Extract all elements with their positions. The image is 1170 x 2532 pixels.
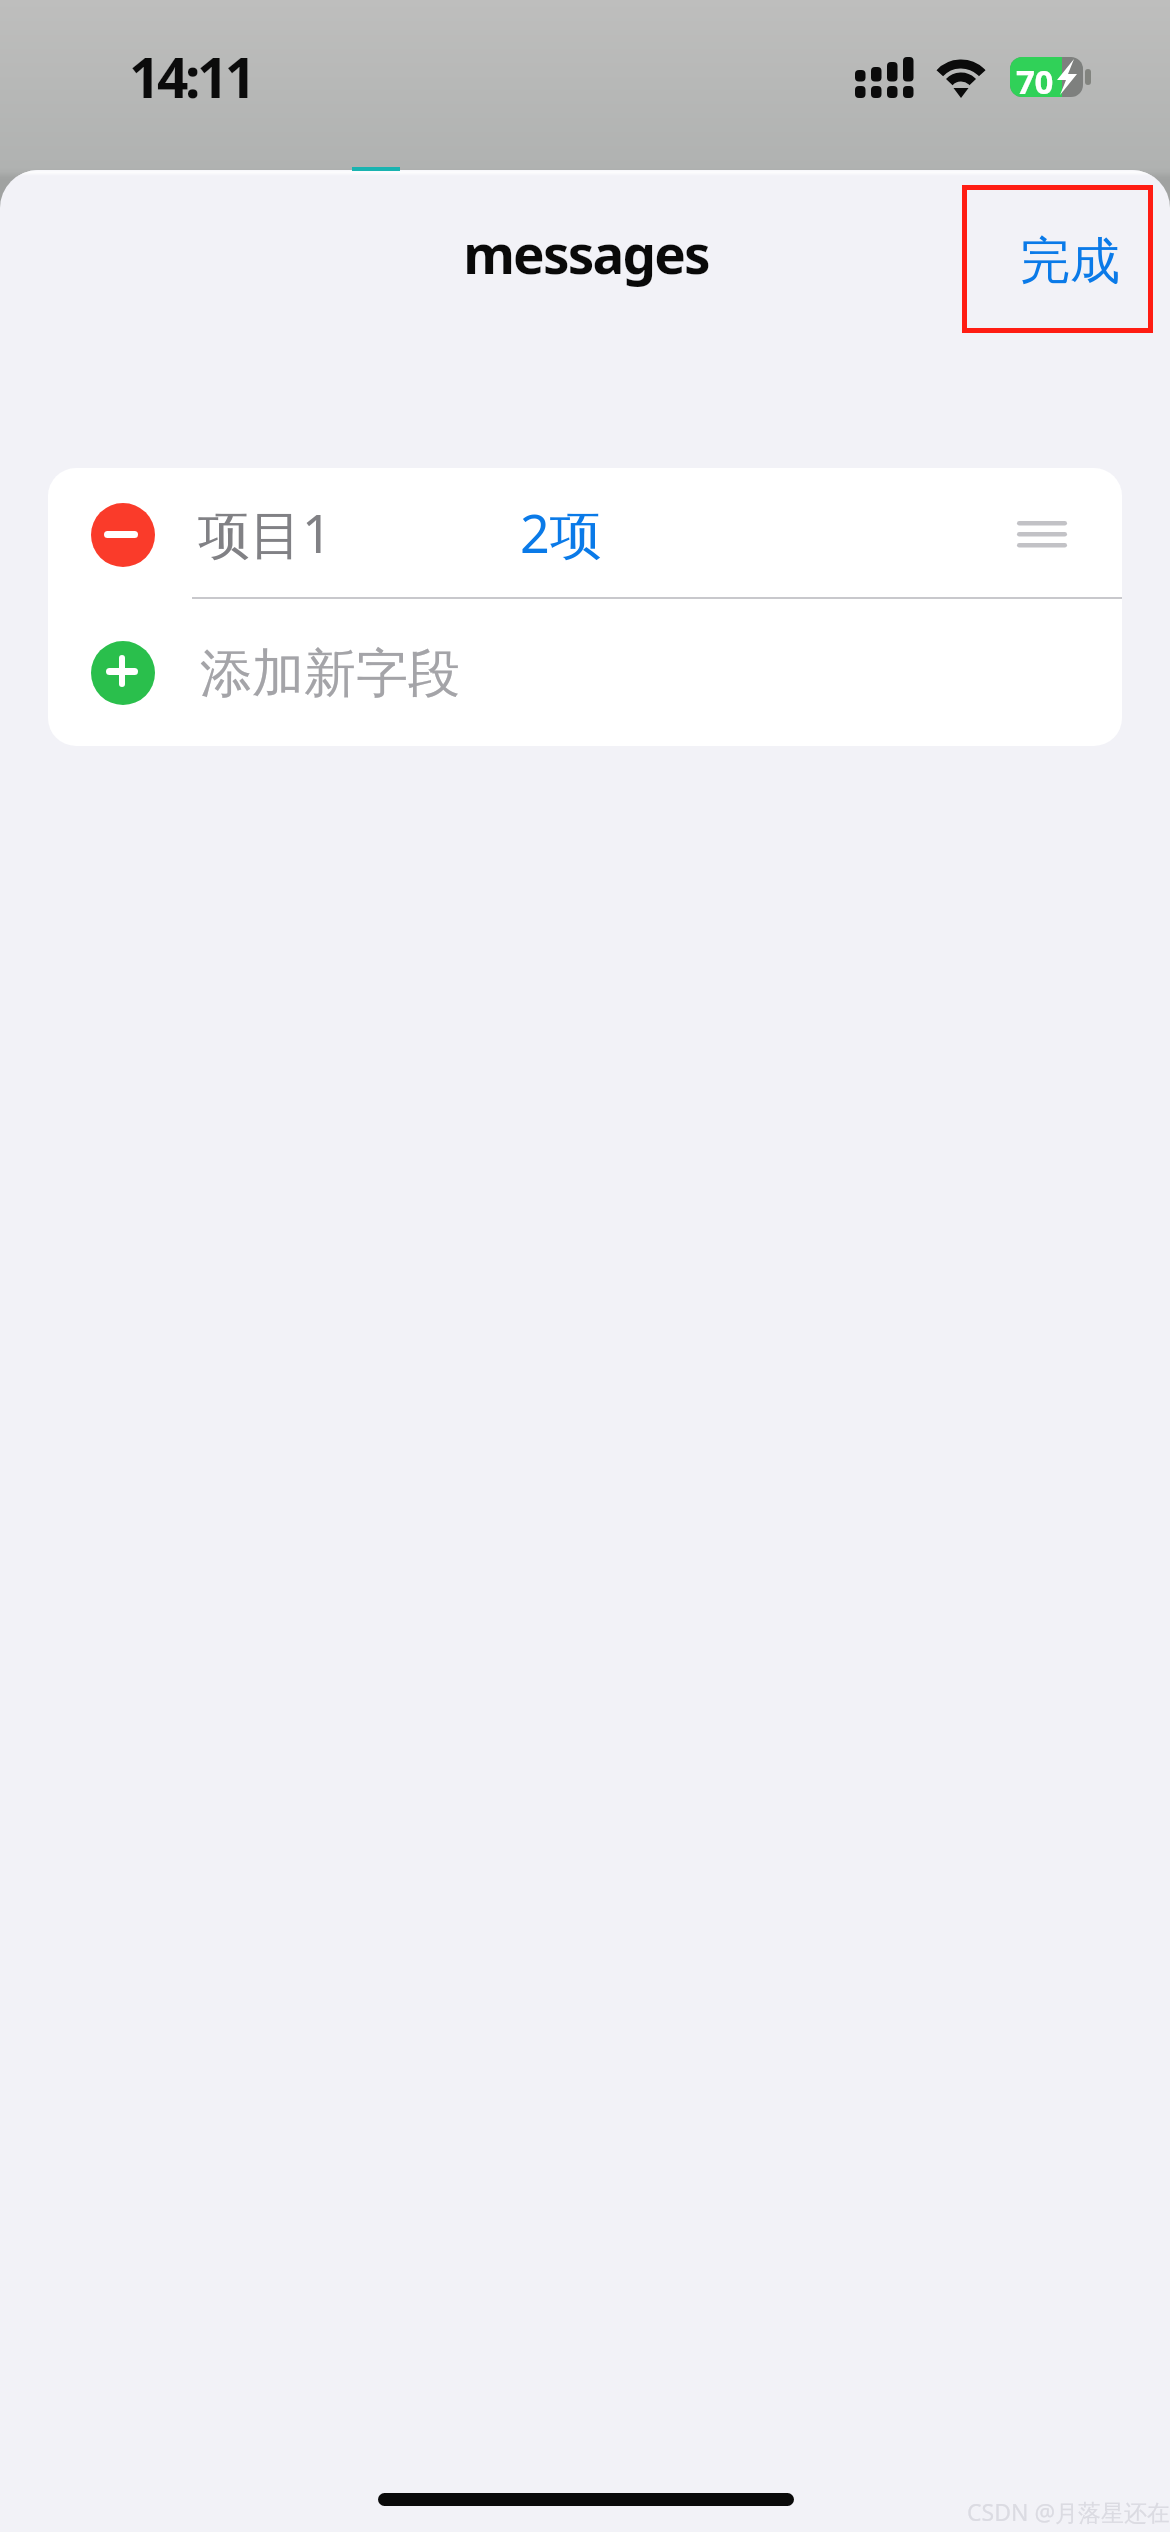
- button[interactable]: Remove item: [91, 503, 155, 567]
- staticText: 70: [1016, 59, 1053, 104]
- button[interactable]: Remove item: [48, 468, 1122, 597]
- staticText: 项目1: [198, 497, 332, 568]
- staticText: 2项: [520, 497, 602, 568]
- button[interactable]: Add new field: [91, 641, 155, 705]
- staticText: 添加新字段: [200, 641, 460, 707]
- staticText: CSDN @月落星还在: [967, 2496, 1170, 2527]
- button[interactable]: Add new field: [48, 599, 1122, 746]
- staticText: 14:11: [129, 39, 253, 114]
- staticText: messages: [463, 217, 709, 289]
- button[interactable]: 完成: [963, 184, 1154, 333]
- button[interactable]: Reorder: [962, 468, 1122, 597]
- staticText: 完成: [1020, 230, 1120, 293]
